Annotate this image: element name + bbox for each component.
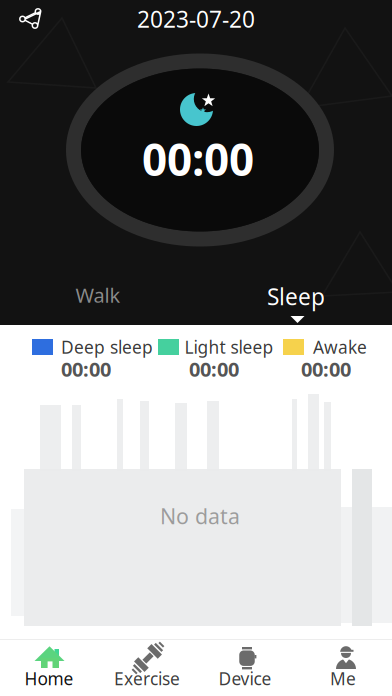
staticText: Sleep — [267, 281, 325, 311]
staticText: Light sleep — [184, 335, 273, 358]
button[interactable]: Walk — [38, 275, 158, 315]
staticText: Awake — [313, 335, 367, 358]
staticText: 2023-07-20 — [137, 4, 255, 34]
staticText: 00:00 — [189, 356, 239, 382]
staticText: 00:00 — [301, 356, 351, 382]
button[interactable]: Sleep — [236, 276, 356, 316]
staticText: Device — [218, 667, 271, 690]
staticText: No data — [160, 502, 240, 530]
button[interactable] — [3, 0, 47, 40]
button[interactable]: Exercise — [98, 640, 196, 696]
button[interactable]: Home — [0, 640, 98, 696]
button[interactable]: Device — [196, 640, 294, 696]
staticText: Me — [330, 667, 356, 690]
staticText: Exercise — [114, 667, 180, 690]
staticText: 00:00 — [61, 356, 111, 382]
staticText: Walk — [75, 282, 120, 308]
staticText: Deep sleep — [61, 335, 153, 358]
button[interactable]: Me — [294, 640, 392, 696]
staticText: 00:00 — [142, 130, 254, 188]
staticText: Home — [24, 667, 73, 690]
